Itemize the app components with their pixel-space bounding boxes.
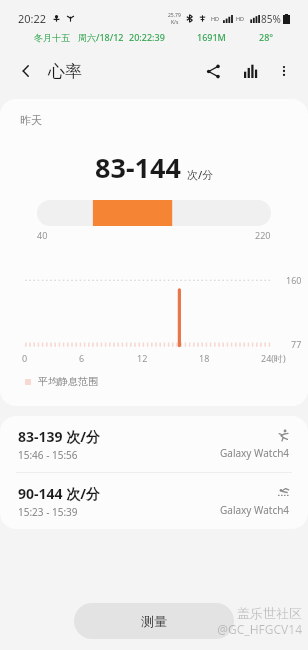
staticText: 40	[37, 229, 48, 241]
staticText: 85%	[261, 12, 281, 26]
staticText: 77	[291, 338, 302, 350]
staticText: @GC_HFGCV14	[217, 621, 302, 637]
staticText: 18	[199, 352, 210, 364]
staticText: 盖乐世社区	[237, 605, 302, 621]
staticText: 25.79	[168, 12, 181, 19]
staticText: 0	[22, 352, 28, 364]
staticText: 1691M	[197, 31, 226, 43]
staticText: 周六/18/12	[78, 31, 124, 43]
staticText: 测量	[141, 613, 167, 629]
staticText: 28°	[259, 31, 274, 43]
staticText: 220	[255, 229, 271, 241]
button[interactable]: Statistics	[236, 56, 266, 86]
staticText: 24(时)	[261, 352, 286, 364]
staticText: 冬月十五	[34, 32, 70, 43]
staticText: 90-144 次/分	[18, 484, 100, 503]
staticText: 20:22:39	[129, 31, 165, 43]
staticText: 83-144	[95, 149, 181, 186]
staticText: 心率	[48, 61, 82, 82]
button[interactable]: 昨天	[0, 99, 308, 406]
button[interactable]: Share	[198, 56, 228, 86]
staticText: Galaxy Watch4	[220, 446, 290, 460]
staticText: 83-139 次/分	[18, 427, 100, 446]
staticText: 20:22	[18, 11, 47, 26]
staticText: 昨天	[20, 113, 42, 127]
button[interactable]: More options	[270, 57, 298, 85]
staticText: 12	[137, 352, 148, 364]
staticText: HD	[211, 15, 220, 22]
staticText: 6	[79, 352, 85, 364]
staticText: 次/分	[187, 167, 214, 182]
button[interactable]: 83-139 次/分	[0, 416, 308, 472]
staticText: Galaxy Watch4	[220, 503, 290, 517]
button[interactable]: Back	[12, 57, 40, 85]
button[interactable]: 90-144 次/分	[0, 473, 308, 529]
staticText: K/s	[171, 19, 179, 26]
button[interactable]: 测量	[74, 603, 234, 639]
staticText: 15:46 - 15:56	[18, 448, 78, 462]
staticText: 160	[286, 274, 302, 286]
staticText: 平均静息范围	[38, 375, 98, 388]
staticText: 15:23 - 15:39	[18, 505, 78, 519]
staticText: HD	[236, 15, 245, 22]
